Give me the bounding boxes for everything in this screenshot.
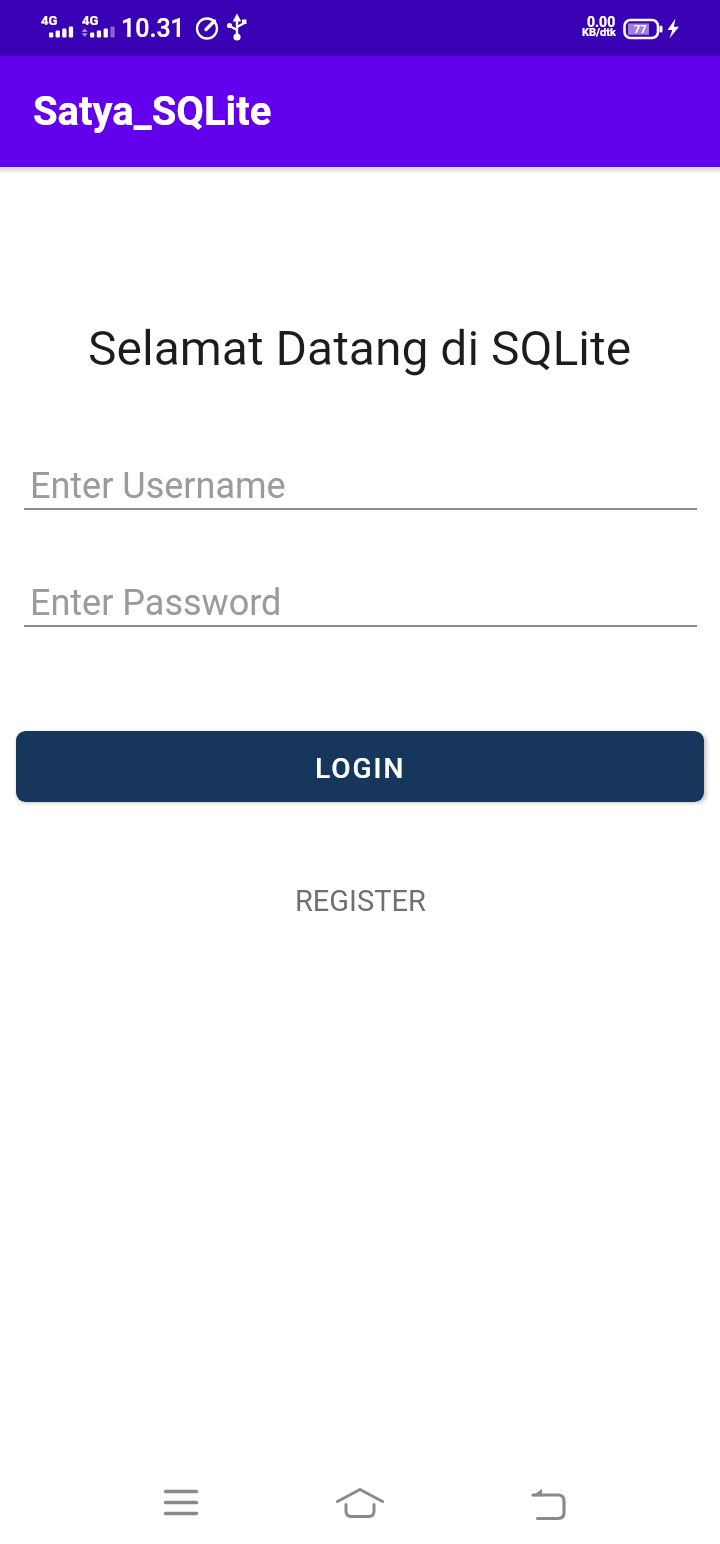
button[interactable]: Enter Password: [24, 578, 697, 628]
button[interactable]: REGISTER: [287, 880, 434, 920]
staticText: 0.00: [587, 14, 616, 30]
button[interactable]: [323, 1466, 397, 1540]
staticText: Enter Password: [30, 582, 282, 624]
staticText: 77: [634, 23, 647, 36]
staticText: 4G: [41, 13, 58, 28]
staticText: REGISTER: [295, 884, 426, 916]
button[interactable]: [512, 1466, 586, 1540]
button[interactable]: [144, 1466, 218, 1540]
staticText: 10.31: [121, 14, 185, 43]
button[interactable]: Enter Username: [24, 461, 697, 511]
staticText: Satya_SQLite: [33, 88, 272, 135]
staticText: KB/dtk: [582, 26, 616, 39]
staticText: Selamat Datang di SQLite: [88, 320, 632, 376]
staticText: 4G: [82, 13, 99, 28]
button[interactable]: LOGIN: [16, 731, 704, 802]
staticText: Enter Username: [30, 465, 286, 507]
staticText: LOGIN: [315, 752, 406, 785]
